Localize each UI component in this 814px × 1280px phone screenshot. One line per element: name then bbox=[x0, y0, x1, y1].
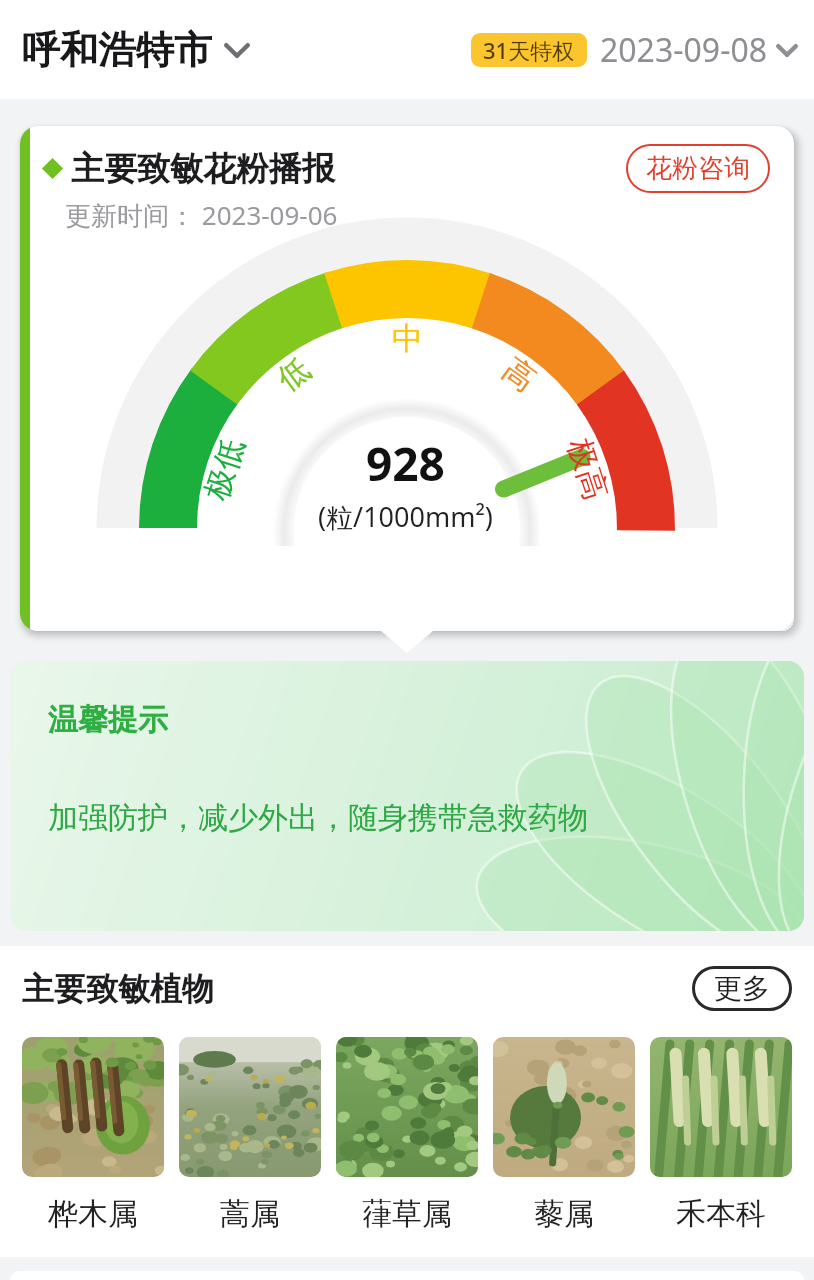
staticText: 更多 bbox=[714, 971, 770, 1006]
button[interactable]: 禾本科 bbox=[650, 1037, 792, 1233]
staticText: 呼和浩特市 bbox=[22, 26, 212, 74]
staticText: 主要致敏植物 bbox=[22, 969, 214, 1009]
staticText: 桦木属 bbox=[48, 1195, 138, 1233]
staticText: 葎草属 bbox=[362, 1195, 452, 1233]
staticText: 极低 bbox=[196, 434, 253, 505]
staticText: 31天特权 bbox=[483, 35, 575, 65]
button[interactable]: 花粉咨询 bbox=[626, 144, 770, 193]
staticText: 2023-09-08 bbox=[600, 28, 768, 72]
staticText: 高 bbox=[495, 350, 543, 400]
staticText: 更新时间： 2023-09-06 bbox=[65, 197, 338, 233]
button[interactable]: 31天特权 bbox=[471, 33, 587, 67]
button[interactable]: 藜属 bbox=[493, 1037, 635, 1233]
staticText: 花粉咨询 bbox=[646, 152, 750, 185]
staticText: 藜属 bbox=[534, 1195, 594, 1233]
staticText: 禾本科 bbox=[676, 1195, 766, 1233]
button[interactable]: 更多 bbox=[692, 966, 792, 1011]
button[interactable]: 桦木属 bbox=[22, 1037, 164, 1233]
button[interactable]: 2023-09-08 bbox=[600, 28, 798, 72]
staticText: 主要致敏花粉播报 bbox=[71, 148, 335, 190]
staticText: (粒/1000mm²) bbox=[318, 498, 493, 535]
staticText: 加强防护，减少外出，随身携带急救药物 bbox=[48, 799, 588, 837]
staticText: 温馨提示 bbox=[48, 701, 168, 739]
staticText: 极高 bbox=[559, 434, 616, 505]
staticText: 蒿属 bbox=[220, 1195, 280, 1233]
button[interactable]: 蒿属 bbox=[179, 1037, 321, 1233]
button[interactable]: 葎草属 bbox=[336, 1037, 478, 1233]
staticText: 低 bbox=[270, 349, 318, 399]
button[interactable]: 温馨提示 bbox=[10, 661, 804, 931]
staticText: 中 bbox=[392, 319, 423, 358]
staticText: 928 bbox=[366, 432, 445, 495]
button[interactable]: 呼和浩特市 bbox=[22, 26, 250, 74]
